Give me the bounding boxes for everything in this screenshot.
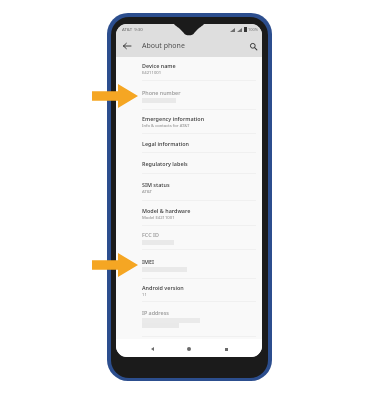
- staticText: IMEI: [142, 258, 155, 265]
- button[interactable]: Home: [176, 341, 202, 357]
- staticText: 100%: [248, 27, 259, 32]
- button[interactable]: Regulatory labels: [116, 153, 262, 174]
- staticText: E4211001: [142, 70, 162, 76]
- button[interactable]: FCC ID: [116, 226, 262, 250]
- button[interactable]: Back: [121, 40, 133, 52]
- staticText: Android version: [142, 284, 184, 291]
- button[interactable]: IMEI: [116, 250, 262, 279]
- button[interactable]: Model & hardware: [116, 201, 262, 226]
- staticText: Phone number: [142, 89, 181, 96]
- button[interactable]: SIM status: [116, 174, 262, 201]
- staticText: Emergency information: [142, 115, 205, 122]
- staticText: Device name: [142, 62, 176, 69]
- button[interactable]: Device name: [116, 57, 262, 81]
- staticText: IP address: [142, 309, 169, 316]
- staticText: FCC ID: [142, 231, 159, 238]
- button[interactable]: Back: [139, 341, 165, 357]
- staticText: Regulatory labels: [142, 160, 188, 167]
- staticText: AT&T 9:30: [122, 26, 143, 32]
- button[interactable]: Legal information: [116, 134, 262, 153]
- staticText: AT&T: [142, 189, 152, 195]
- button[interactable]: Android version: [116, 279, 262, 302]
- button[interactable]: Emergency information: [116, 110, 262, 134]
- staticText: 11: [142, 292, 147, 298]
- button[interactable]: Phone number: [116, 81, 262, 110]
- staticText: Info & contacts for AT&T: [142, 123, 190, 129]
- staticText: Legal information: [142, 140, 189, 147]
- staticText: About phone: [142, 41, 185, 51]
- button[interactable]: Search: [247, 40, 259, 52]
- button[interactable]: Recents: [213, 341, 239, 357]
- staticText: Model E4211001: [142, 215, 175, 221]
- staticText: SIM status: [142, 181, 170, 188]
- staticText: Model & hardware: [142, 207, 191, 214]
- button[interactable]: IP address: [116, 302, 262, 337]
